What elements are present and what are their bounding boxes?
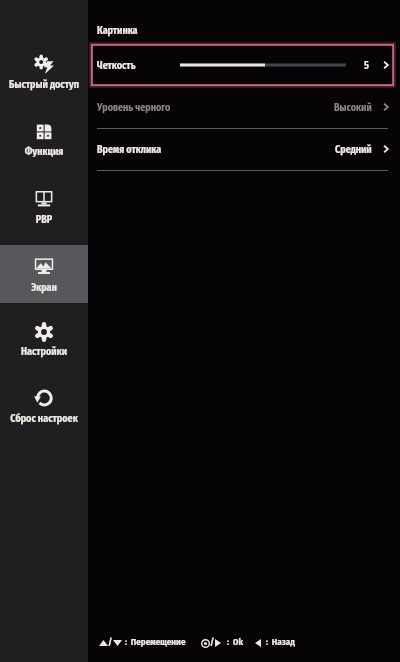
staticText: PBP	[0, 214, 88, 226]
staticText: Картинка	[97, 25, 138, 37]
other: PBP	[34, 189, 54, 209]
button[interactable]: Уровень черного	[91, 98, 394, 128]
staticText: Настройки	[0, 346, 88, 358]
button[interactable]: Время отклика	[91, 140, 394, 170]
staticText: : Перемещение	[125, 637, 186, 648]
staticText: Сброс настроек	[0, 413, 88, 425]
staticText: : Ok	[227, 637, 244, 648]
button[interactable]	[0, 378, 88, 421]
other: Сброс настроек	[34, 388, 54, 408]
staticText: : Назад	[266, 637, 295, 648]
staticText: 5	[364, 60, 369, 72]
button[interactable]	[0, 45, 88, 88]
button[interactable]: Четкость	[91, 44, 394, 86]
button[interactable]	[0, 112, 88, 155]
button[interactable]	[0, 180, 88, 222]
staticText: Время отклика	[97, 144, 162, 156]
staticText: Четкость	[97, 60, 136, 72]
other: Функция	[34, 122, 54, 142]
staticText: Уровень черного	[97, 102, 171, 114]
staticText: Быстрый доступ	[0, 79, 88, 91]
other: Экран	[34, 257, 54, 277]
staticText: Экран	[0, 282, 88, 294]
other: Настройки	[34, 322, 54, 342]
button[interactable]	[0, 245, 88, 303]
staticText: Высокий	[334, 102, 372, 114]
staticText: /	[210, 637, 215, 648]
button[interactable]	[0, 312, 88, 355]
other: Быстрый доступ	[34, 54, 54, 74]
staticText: Средний	[335, 144, 372, 156]
staticText: Функция	[0, 146, 88, 158]
staticText: /	[108, 637, 113, 648]
